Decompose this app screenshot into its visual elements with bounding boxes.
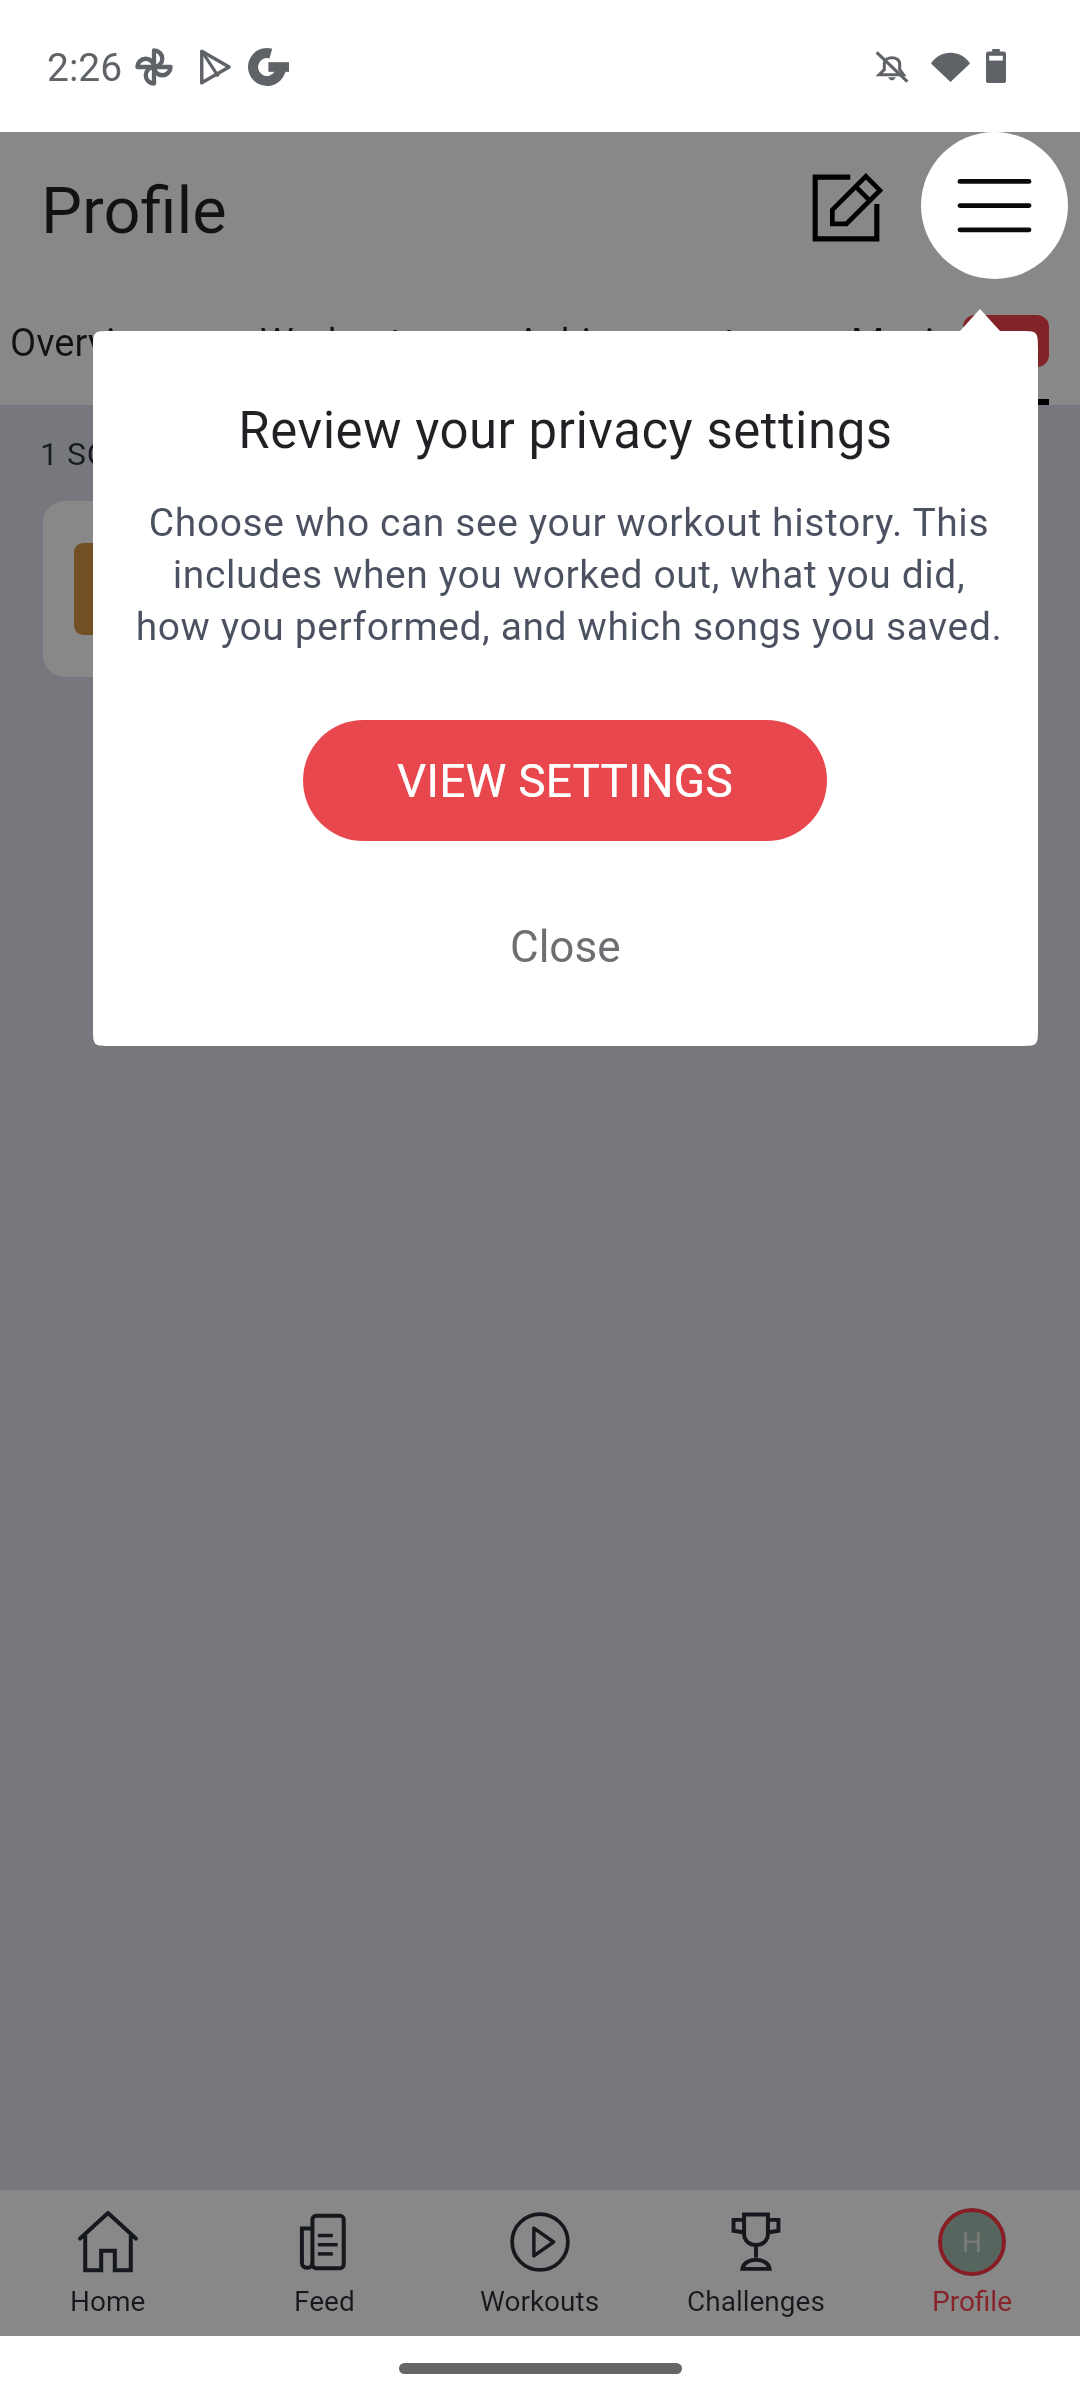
staticText: Review your privacy settings (93, 401, 1038, 461)
button[interactable]: H (864, 2190, 1080, 2336)
button[interactable]: Workouts (254, 321, 428, 366)
staticText: 1 SONG (40, 435, 156, 473)
button[interactable]: Achievements (510, 321, 762, 366)
staticText: H (962, 2226, 982, 2259)
staticText: 2:26 (47, 45, 123, 91)
button[interactable]: Challenges (648, 2190, 864, 2336)
staticText: Choose who can see your workout history.… (133, 500, 1005, 650)
staticText: Challenges (687, 2285, 825, 2318)
button[interactable]: Close (450, 901, 681, 993)
button[interactable]: Music (845, 321, 960, 366)
button[interactable]: VIEW SETTINGS (303, 720, 827, 841)
staticText: Home (70, 2285, 146, 2318)
staticText: Feed (294, 2285, 355, 2318)
staticText: Profile (932, 2285, 1013, 2318)
button[interactable]: Feed (216, 2190, 432, 2336)
button[interactable] (43, 501, 1037, 677)
button[interactable]: Home (0, 2190, 216, 2336)
button[interactable]: Edit profile (796, 158, 896, 258)
staticText: Achievements (516, 321, 756, 366)
button[interactable]: Menu (921, 132, 1068, 279)
staticText: Music (851, 321, 954, 366)
staticText: Workouts (260, 321, 422, 366)
button[interactable]: Overview (4, 321, 171, 366)
staticText: Profile (41, 173, 227, 249)
button[interactable]: Workouts (432, 2190, 648, 2336)
staticText: Close (510, 921, 621, 973)
staticText: VIEW SETTINGS (397, 754, 733, 808)
staticText: Overview (10, 321, 165, 366)
staticText: Workouts (480, 2285, 600, 2318)
